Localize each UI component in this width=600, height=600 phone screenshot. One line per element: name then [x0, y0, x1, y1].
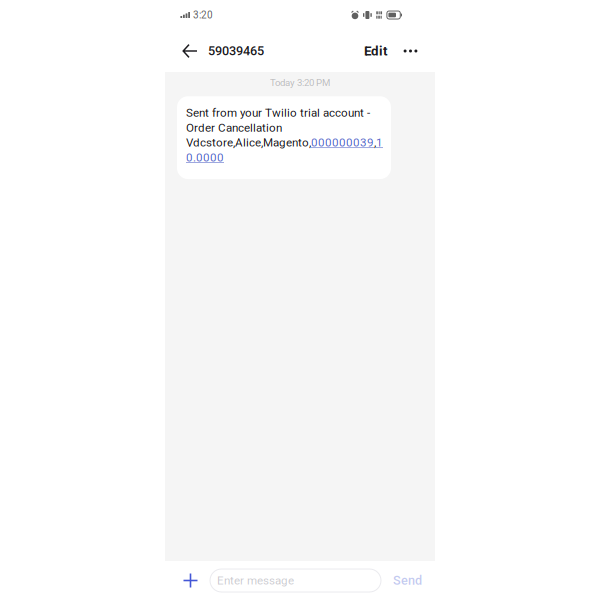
- staticText: 3:20: [193, 9, 213, 21]
- staticText: Edit: [364, 43, 388, 59]
- button[interactable]: Edit: [364, 43, 388, 59]
- staticText: Sent from your Twilio trial account - Or…: [186, 105, 383, 165]
- staticText: Enter message: [217, 574, 294, 587]
- button[interactable]: Add attachment: [178, 567, 203, 594]
- staticText: Today 3:20 PM: [270, 77, 330, 88]
- button[interactable]: Send: [381, 565, 422, 596]
- button[interactable]: Back: [182, 43, 208, 59]
- staticText: 59039465: [208, 44, 264, 58]
- staticText: Send: [393, 573, 422, 588]
- button[interactable]: More options: [388, 43, 418, 58]
